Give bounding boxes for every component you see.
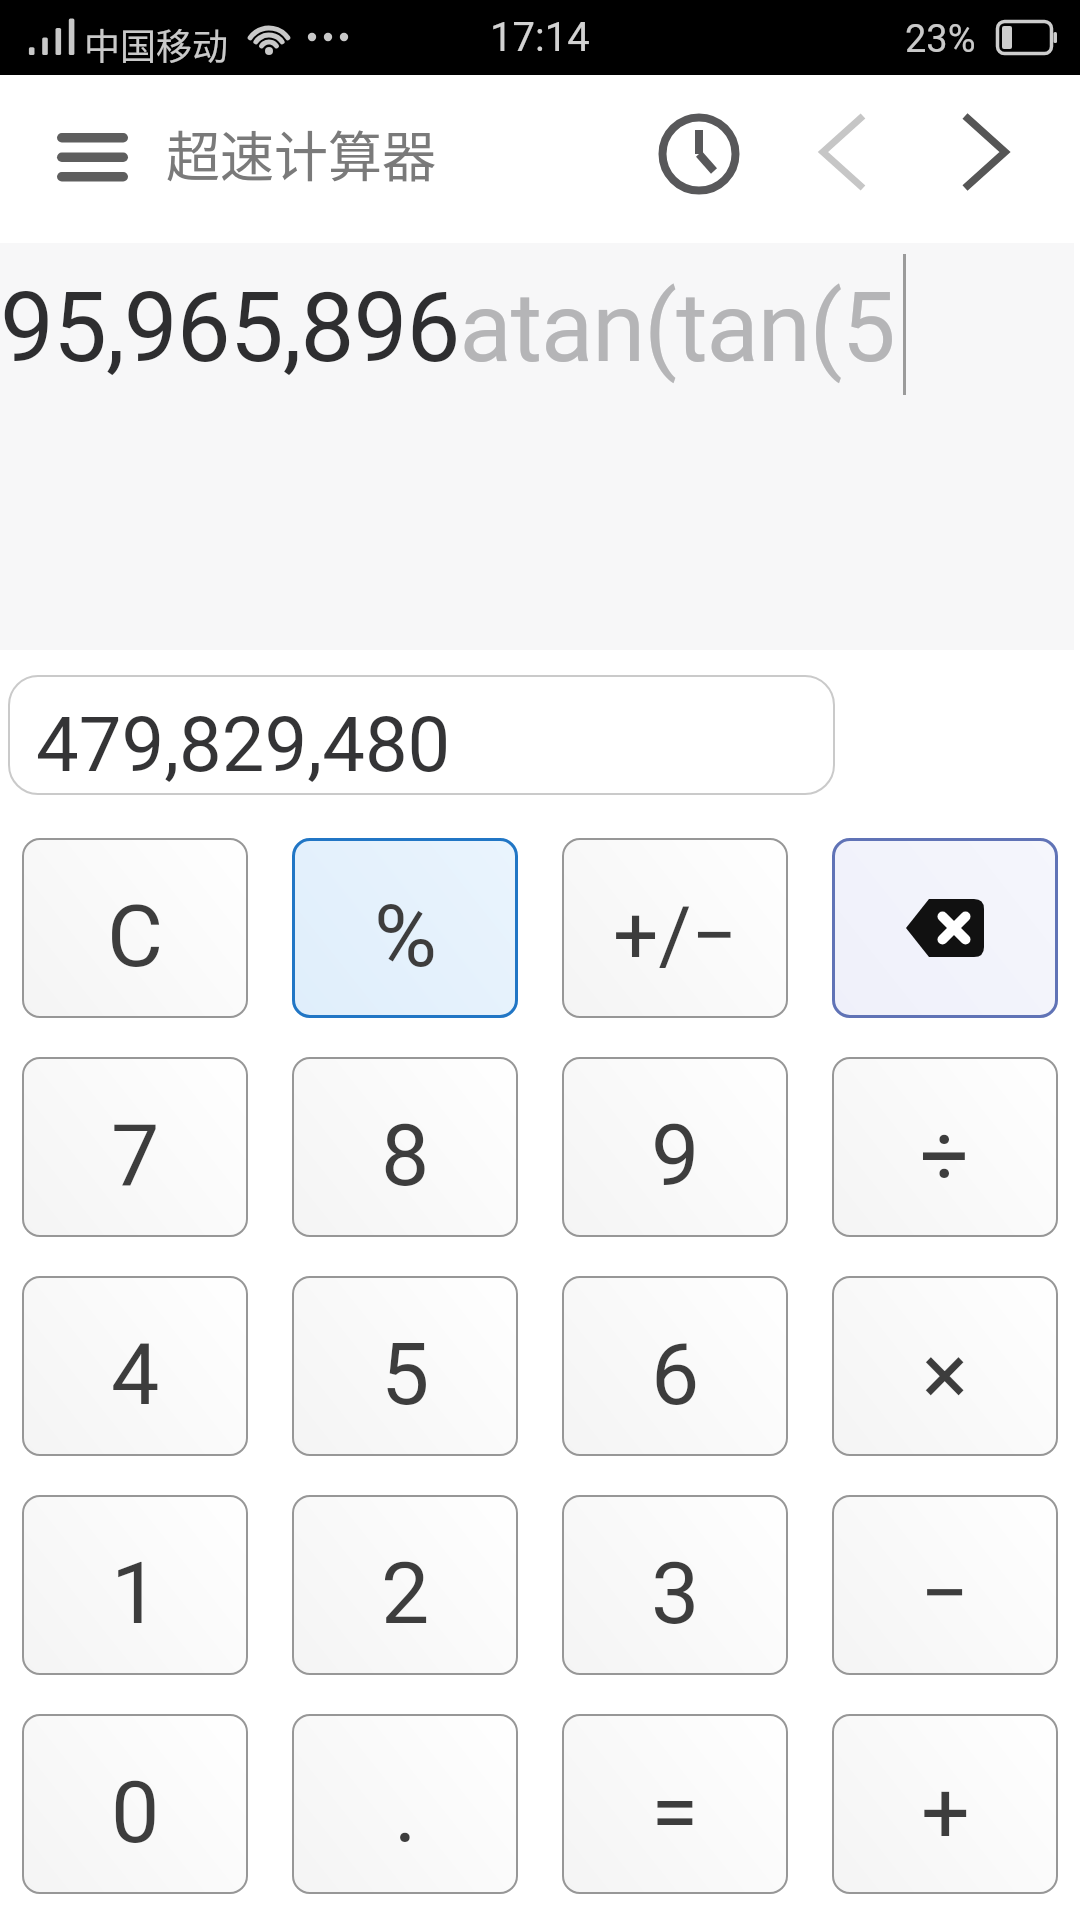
staticText: 95,965,896atan(tan(5 xyxy=(0,272,895,385)
staticText: % xyxy=(374,886,437,987)
button[interactable]: 7 xyxy=(22,1057,248,1237)
staticText: 2 xyxy=(381,1543,430,1644)
button[interactable] xyxy=(795,105,890,200)
button[interactable] xyxy=(938,105,1033,200)
staticText: 3 xyxy=(651,1543,700,1644)
button[interactable]: 2 xyxy=(292,1495,518,1675)
staticText: . xyxy=(394,1762,417,1863)
button[interactable]: 3 xyxy=(562,1495,788,1675)
staticText: +/− xyxy=(613,889,738,983)
button[interactable]: 479,829,480 xyxy=(8,675,835,795)
staticText: 0 xyxy=(111,1762,160,1863)
button[interactable]: C xyxy=(22,838,248,1018)
button[interactable]: + xyxy=(832,1714,1058,1894)
button[interactable]: = xyxy=(562,1714,788,1894)
staticText: 17:14 xyxy=(490,14,590,61)
staticText: 超速计算器 xyxy=(166,114,436,192)
button[interactable]: 4 xyxy=(22,1276,248,1456)
staticText: 8 xyxy=(381,1105,430,1206)
button[interactable]: − xyxy=(832,1495,1058,1675)
staticText: ÷ xyxy=(920,1105,970,1206)
staticText: 4 xyxy=(111,1324,160,1425)
staticText: 23% xyxy=(905,17,976,62)
staticText: 6 xyxy=(651,1324,700,1425)
button[interactable]: 0 xyxy=(22,1714,248,1894)
button[interactable]: × xyxy=(832,1276,1058,1456)
button[interactable]: +/− xyxy=(562,838,788,1018)
staticText: C xyxy=(107,886,163,987)
staticText: 7 xyxy=(111,1105,160,1206)
button[interactable]: . xyxy=(292,1714,518,1894)
staticText: 5 xyxy=(381,1324,430,1425)
staticText: − xyxy=(920,1543,970,1644)
staticText: + xyxy=(921,1762,970,1863)
button[interactable]: % xyxy=(292,838,518,1018)
button[interactable] xyxy=(652,105,747,200)
staticText: = xyxy=(651,1762,699,1863)
button[interactable]: 5 xyxy=(292,1276,518,1456)
staticText: 9 xyxy=(651,1105,700,1206)
button[interactable] xyxy=(43,119,142,196)
staticText: 中国移动 xyxy=(84,18,229,70)
button[interactable]: 1 xyxy=(22,1495,248,1675)
staticText: × xyxy=(922,1324,968,1425)
button[interactable]: 9 xyxy=(562,1057,788,1237)
staticText: 479,829,480 xyxy=(36,700,451,789)
button[interactable]: 8 xyxy=(292,1057,518,1237)
button[interactable]: 6 xyxy=(562,1276,788,1456)
button[interactable]: ÷ xyxy=(832,1057,1058,1237)
button[interactable] xyxy=(832,838,1058,1018)
staticText: 1 xyxy=(111,1543,160,1644)
